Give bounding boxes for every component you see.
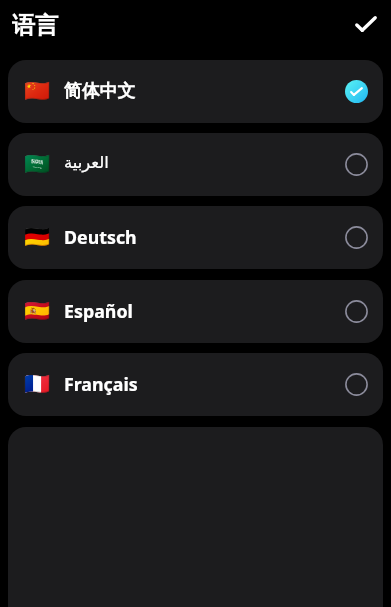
staticText: Français [64,372,138,396]
staticText: 🇨🇳 [24,79,51,104]
button[interactable]: Confirm [348,6,384,42]
staticText: 🇩🇪 [24,225,51,250]
staticText: 语言 [12,11,58,40]
button[interactable]: 🇪🇸 [8,280,383,343]
button[interactable]: 🇩🇪 [8,206,383,269]
button[interactable]: 🇸🇦 [8,133,383,196]
staticText: 🇫🇷 [24,372,51,397]
staticText: 🇸🇦 [24,152,51,177]
staticText: 🇪🇸 [24,299,51,324]
staticText: Deutsch [64,225,137,249]
staticText: العربية [64,153,109,172]
button[interactable]: 🇫🇷 [8,353,383,416]
staticText: 简体中文 [64,80,136,102]
button[interactable]: 🇨🇳 [8,60,383,123]
staticText: Español [64,299,133,323]
